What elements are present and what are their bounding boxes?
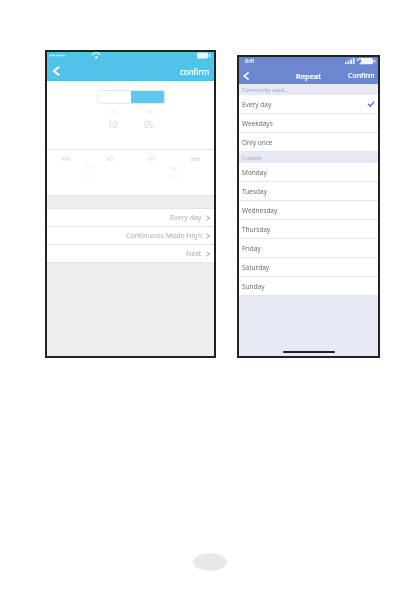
staticText: 07: [148, 155, 155, 163]
staticText: Saturday: [242, 263, 270, 272]
button[interactable]: Weekdays: [237, 114, 380, 132]
staticText: 04: [146, 108, 153, 116]
button[interactable]: Back: [48, 63, 64, 79]
button[interactable]: [131, 90, 165, 104]
button[interactable]: [97, 90, 131, 104]
button[interactable]: Saturday: [237, 258, 380, 276]
button[interactable]: Friday: [237, 239, 380, 257]
staticText: Custom: [242, 154, 262, 161]
staticText: 006: [190, 155, 201, 163]
staticText: confirm: [180, 66, 210, 77]
button[interactable]: Sunday: [237, 277, 380, 295]
staticText: 9:41: [245, 58, 255, 65]
staticText: 10: [106, 155, 113, 163]
staticText: 10: [108, 119, 118, 130]
staticText: Continuous Mode High: [126, 231, 202, 241]
button[interactable]: Every day: [45, 209, 216, 226]
staticText: Repeat: [296, 71, 322, 81]
button[interactable]: Tuesday: [237, 182, 380, 200]
button[interactable]: Every day: [237, 95, 380, 113]
staticText: 08: [170, 164, 177, 172]
button[interactable]: Wednesday: [237, 201, 380, 219]
button[interactable]: Continuous Mode High: [45, 227, 216, 244]
button[interactable]: Back: [239, 69, 253, 83]
staticText: Sunday: [242, 282, 265, 291]
staticText: Wednesday: [242, 206, 278, 215]
staticText: PM: [61, 155, 71, 163]
staticText: 05: [144, 119, 154, 130]
staticText: Every day: [242, 100, 272, 109]
button[interactable]: Confirm: [343, 69, 380, 83]
staticText: Weekdays: [242, 119, 273, 128]
button[interactable]: Next: [45, 245, 216, 262]
staticText: 11: [85, 164, 92, 172]
button[interactable]: confirm: [174, 64, 216, 79]
staticText: Tuesday: [242, 187, 268, 196]
staticText: Confirm: [348, 71, 375, 81]
staticText: 12: [85, 173, 92, 181]
button[interactable]: Only once: [237, 133, 380, 151]
staticText: Commonly used…: [242, 86, 289, 93]
staticText: Monday: [242, 168, 267, 177]
staticText: Only once: [242, 138, 273, 147]
staticText: 09: [170, 173, 177, 181]
staticText: Friday: [242, 244, 261, 253]
staticText: Thursday: [242, 225, 271, 234]
staticText: Next: [186, 249, 202, 259]
button[interactable]: Monday: [237, 163, 380, 181]
button[interactable]: Thursday: [237, 220, 380, 238]
staticText: 09: [110, 108, 117, 116]
staticText: Every day: [170, 213, 202, 223]
